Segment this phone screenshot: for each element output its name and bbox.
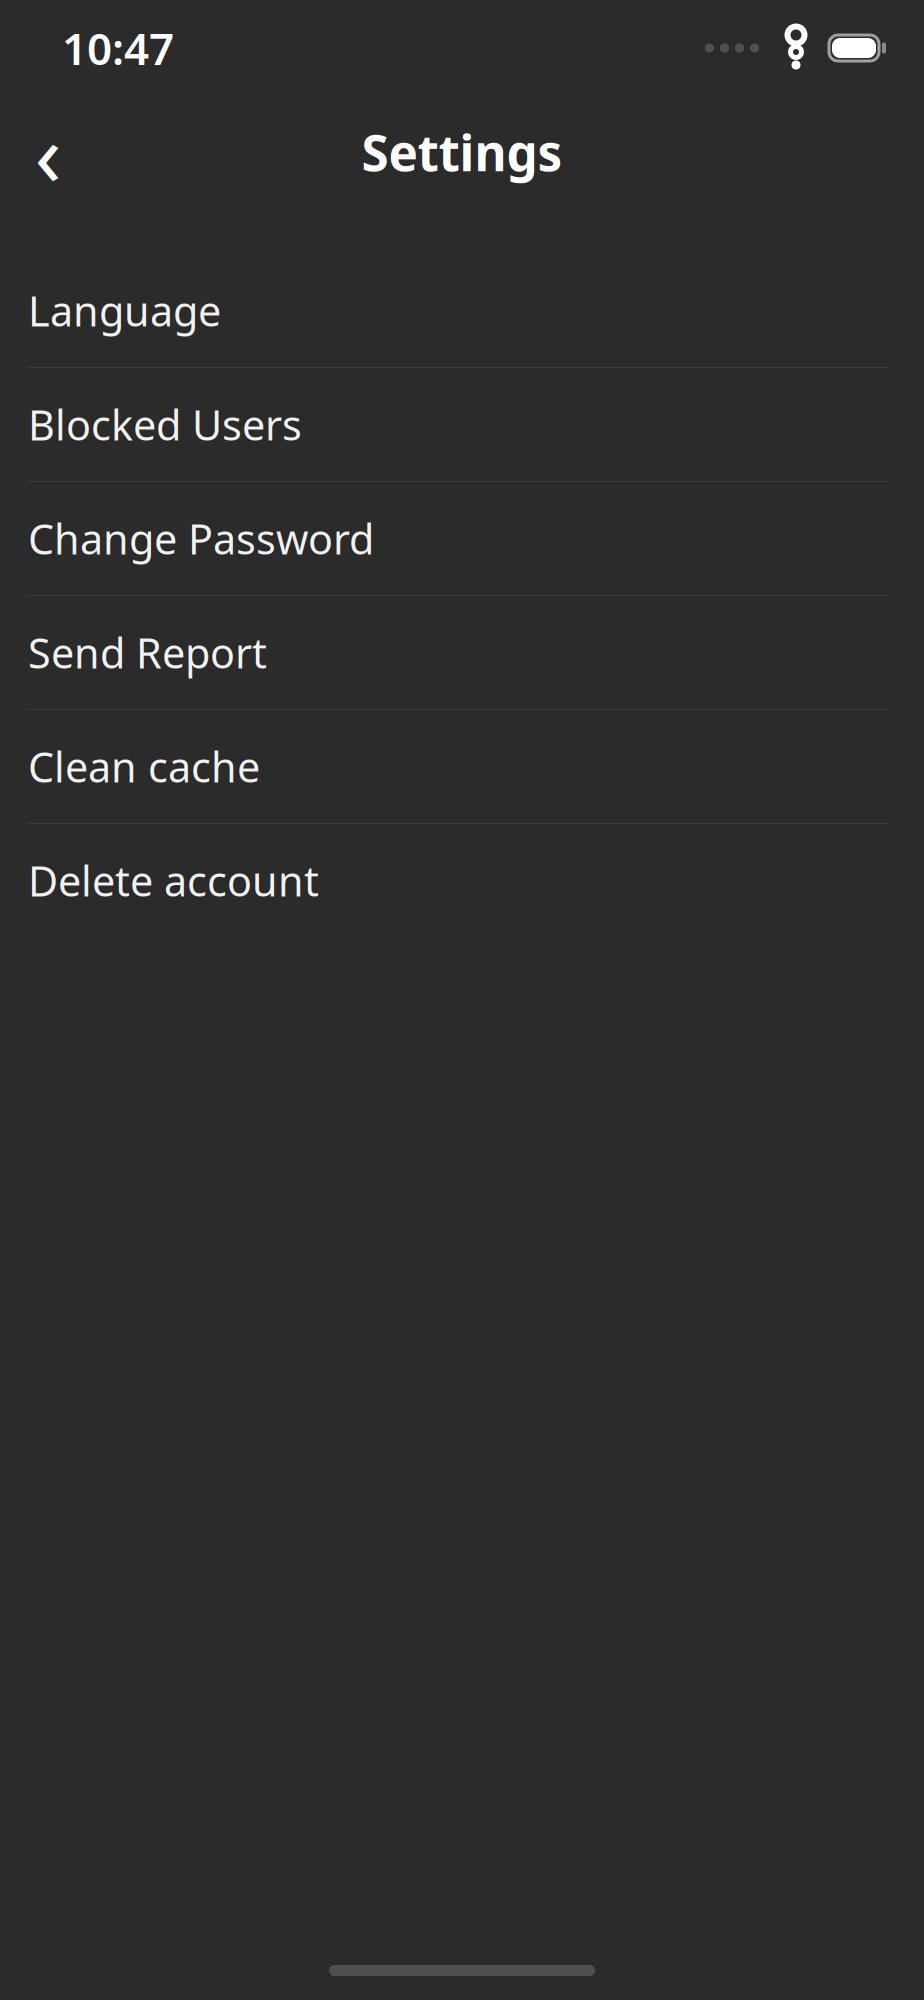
staticText: Send Report (28, 625, 267, 680)
staticText: 10:47 (62, 19, 174, 77)
button[interactable]: Language (0, 254, 924, 368)
button[interactable]: Clean cache (0, 710, 924, 824)
staticText: Clean cache (28, 739, 260, 794)
staticText: ‹ (34, 94, 61, 210)
staticText: Change Password (28, 511, 374, 566)
staticText: Language (28, 283, 221, 338)
staticText: Delete account (28, 853, 319, 908)
staticText: Blocked Users (28, 397, 302, 452)
button[interactable]: Send Report (0, 596, 924, 710)
button[interactable]: Change Password (0, 482, 924, 596)
button[interactable]: Blocked Users (0, 368, 924, 482)
staticText: Settings (361, 119, 562, 185)
button[interactable]: Back (10, 114, 86, 190)
button[interactable]: Delete account (0, 824, 924, 938)
